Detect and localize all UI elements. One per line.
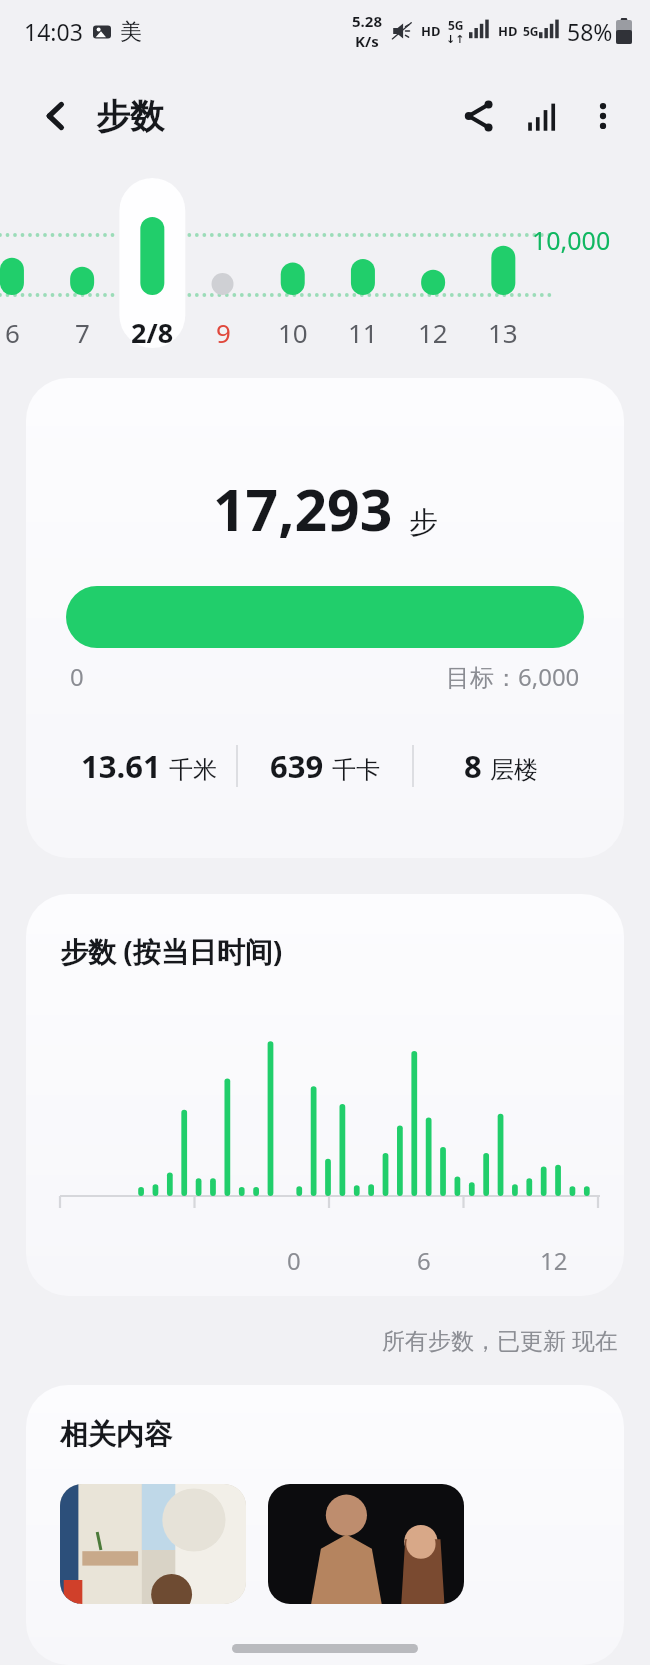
staticText: 12 [418, 315, 448, 350]
staticText: 10,000 [532, 223, 611, 257]
button[interactable]: 639 [238, 745, 412, 787]
button[interactable]: More options [572, 85, 634, 147]
staticText: 11 [348, 315, 378, 350]
staticText: HD [498, 22, 518, 40]
staticText: 639 [270, 745, 324, 787]
staticText: 5G [448, 17, 464, 33]
staticText: K/s [355, 31, 379, 51]
button[interactable]: 17,293 [26, 378, 624, 858]
button[interactable]: 13 [463, 310, 543, 354]
staticText: 美 [120, 18, 142, 46]
staticText: HD [421, 22, 441, 40]
staticText: 步数 [96, 95, 164, 138]
staticText: 58% [567, 16, 613, 47]
button[interactable]: 步数 (按当日时间) [26, 894, 624, 1296]
staticText: 步 [409, 504, 438, 541]
button[interactable]: 13.61 [62, 745, 236, 787]
staticText: 9 [216, 315, 231, 350]
staticText: 0 [70, 660, 84, 693]
button[interactable]: 9 [183, 310, 263, 354]
button[interactable]: 8 [414, 745, 588, 787]
button[interactable]: 12 [393, 310, 473, 354]
button[interactable]: 相关内容 [26, 1385, 624, 1665]
staticText: 层楼 [490, 755, 538, 785]
staticText: 7 [75, 315, 90, 350]
staticText: 步数 (按当日时间) [60, 932, 283, 970]
staticText: 13.61 [81, 745, 161, 787]
button[interactable]: 7 [42, 310, 122, 354]
staticText: 0 [287, 1244, 301, 1277]
staticText: 17,293 [213, 470, 393, 548]
staticText: 2/8 [131, 314, 174, 351]
staticText: 12 [540, 1244, 568, 1277]
button[interactable]: 2/8 [112, 310, 192, 354]
staticText: 13 [488, 315, 518, 350]
staticText: 所有步数，已更新 现在 [382, 1324, 618, 1355]
staticText: 5G [523, 23, 539, 39]
staticText: 6 [5, 315, 20, 350]
staticText: 8 [464, 745, 482, 787]
button[interactable]: 10 [253, 310, 333, 354]
button[interactable] [60, 1484, 246, 1604]
button[interactable] [268, 1484, 464, 1604]
staticText: 5.28 [352, 11, 382, 31]
staticText: 目标：6,000 [446, 660, 580, 693]
staticText: 14:03 [24, 16, 83, 47]
button[interactable]: 11 [323, 310, 403, 354]
staticText: 10 [278, 315, 308, 350]
button[interactable]: Share [448, 85, 510, 147]
button[interactable]: 6 [0, 310, 52, 354]
button[interactable]: Chart [510, 85, 572, 147]
staticText: ↓↑ [446, 33, 465, 46]
staticText: 相关内容 [60, 1417, 172, 1452]
staticText: 6 [417, 1244, 431, 1277]
staticText: 千米 [169, 755, 217, 785]
button[interactable]: Back [28, 88, 84, 144]
staticText: 千卡 [332, 755, 380, 785]
